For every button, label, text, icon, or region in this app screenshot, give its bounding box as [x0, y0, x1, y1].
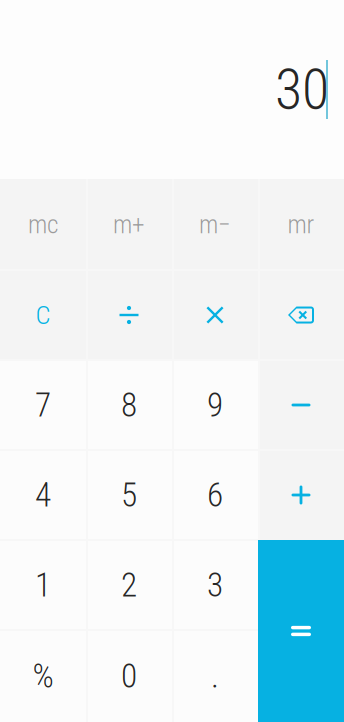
button[interactable]: 2	[86, 540, 172, 630]
button[interactable]: 0	[86, 630, 172, 722]
staticText: %	[32, 656, 53, 696]
button[interactable]: 7	[0, 360, 86, 450]
button[interactable]: Equals	[258, 540, 344, 722]
button[interactable]: mc	[0, 179, 86, 270]
button[interactable]: Backspace	[258, 270, 344, 360]
staticText: mr	[287, 210, 314, 239]
staticText: 4	[35, 475, 51, 515]
staticText: 6	[207, 475, 223, 515]
button[interactable]: 3	[172, 540, 258, 630]
button[interactable]: mr	[258, 179, 344, 270]
button[interactable]: m+	[86, 179, 172, 270]
staticText: 9	[207, 385, 223, 425]
button[interactable]: m−	[172, 179, 258, 270]
staticText: 5	[121, 475, 137, 515]
staticText: 1	[35, 565, 51, 605]
button[interactable]: 5	[86, 450, 172, 540]
button[interactable]: %	[0, 630, 86, 722]
staticText: m−	[199, 210, 231, 239]
button[interactable]: 8	[86, 360, 172, 450]
button[interactable]: Plus	[258, 450, 344, 540]
staticText: 8	[121, 385, 137, 425]
staticText: mc	[28, 210, 58, 239]
button[interactable]: Multiply	[172, 270, 258, 360]
button[interactable]: C	[0, 270, 86, 360]
staticText: m+	[113, 210, 145, 239]
staticText: 7	[35, 385, 51, 425]
button[interactable]: Minus	[258, 360, 344, 450]
staticText: 30	[275, 57, 329, 122]
button[interactable]: .	[172, 630, 258, 722]
button[interactable]: 1	[0, 540, 86, 630]
staticText: .	[211, 656, 219, 696]
button[interactable]: 6	[172, 450, 258, 540]
staticText: 0	[121, 656, 137, 696]
staticText: C	[35, 299, 50, 331]
button[interactable]: 4	[0, 450, 86, 540]
button[interactable]: 9	[172, 360, 258, 450]
button[interactable]: Divide	[86, 270, 172, 360]
staticText: 3	[207, 565, 223, 605]
staticText: 2	[121, 565, 137, 605]
